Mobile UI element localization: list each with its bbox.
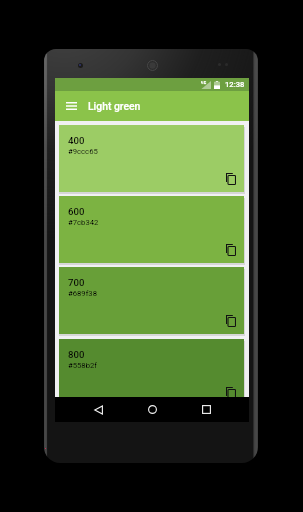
staticText: #558b2f	[68, 361, 98, 370]
staticText: #689f38	[68, 289, 98, 298]
button[interactable]: Open navigation drawer	[61, 94, 81, 118]
button[interactable]: 700	[59, 267, 244, 334]
staticText: Light green	[88, 100, 141, 112]
staticText: 400	[68, 135, 85, 146]
button[interactable]: Copy colour value	[226, 244, 236, 256]
button[interactable]: Recent apps	[197, 397, 215, 422]
staticText: 12:38	[225, 80, 245, 89]
staticText: 600	[68, 206, 85, 217]
button[interactable]: Copy colour value	[226, 315, 236, 327]
button[interactable]: Copy colour value	[226, 387, 236, 399]
staticText: #7cb342	[68, 218, 99, 227]
button[interactable]: 800	[59, 339, 244, 406]
staticText: #9ccc65	[68, 147, 98, 156]
button[interactable]: 400	[59, 125, 244, 192]
staticText: 800	[68, 349, 85, 360]
button[interactable]: Back	[89, 397, 107, 422]
button[interactable]: 600	[59, 196, 244, 263]
button[interactable]: Copy colour value	[226, 173, 236, 185]
button[interactable]: Home	[143, 397, 161, 422]
staticText: 700	[68, 277, 85, 288]
